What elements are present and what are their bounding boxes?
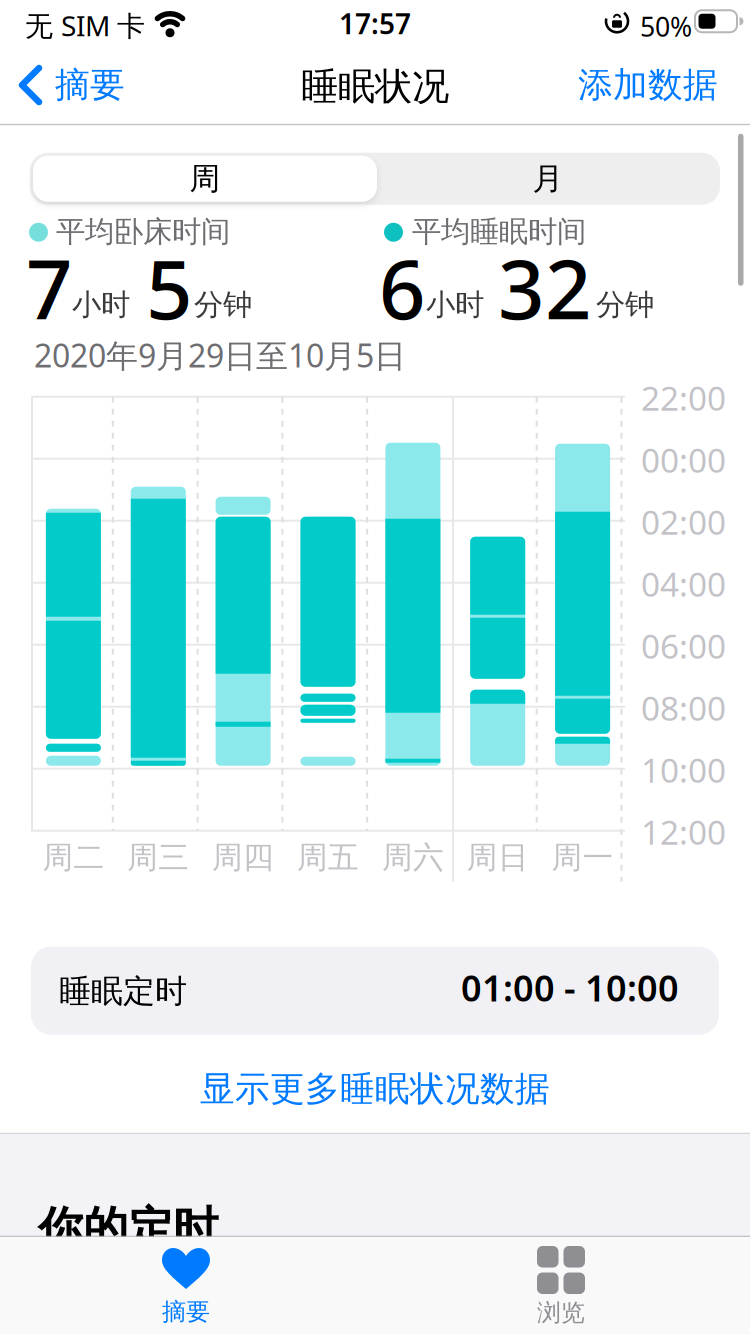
staticText: 22:00	[641, 376, 726, 420]
staticText: 12:00	[641, 810, 726, 854]
staticText: 7	[26, 234, 73, 342]
staticText: 周	[189, 160, 220, 198]
button[interactable]: 周	[33, 156, 377, 202]
staticText: 周二	[42, 839, 104, 876]
staticText: 平均睡眠时间	[412, 214, 586, 250]
staticText: 17:57	[339, 5, 411, 42]
staticText: 06:00	[641, 624, 726, 668]
staticText: 添加数据	[578, 64, 718, 106]
staticText: 00:00	[641, 438, 726, 482]
staticText: 周五	[297, 839, 359, 876]
staticText: 无 SIM 卡	[25, 7, 145, 44]
staticText: 周六	[382, 839, 444, 876]
staticText: 周四	[212, 839, 274, 876]
staticText: 显示更多睡眠状况数据	[200, 1068, 550, 1110]
staticText: 6	[379, 234, 426, 342]
staticText: 08:00	[641, 686, 726, 730]
staticText: 周日	[467, 839, 529, 876]
staticText: 分钟	[194, 287, 252, 323]
staticText: 周一	[552, 839, 614, 876]
staticText: 摘要	[55, 64, 125, 106]
button[interactable]: 摘要	[18, 64, 125, 106]
staticText: 02:00	[641, 500, 726, 544]
button[interactable]: 浏览	[471, 1242, 651, 1332]
staticText: 分钟	[596, 287, 654, 323]
staticText: 月	[532, 160, 563, 198]
staticText: 小时	[72, 287, 130, 323]
staticText: 摘要	[162, 1297, 210, 1326]
button[interactable]: 月	[378, 153, 718, 205]
staticText: 2020年9月29日至10月5日	[34, 334, 406, 376]
staticText: 小时	[426, 287, 484, 323]
staticText: 50%	[640, 9, 692, 44]
staticText: 01:00 - 10:00	[461, 964, 679, 1012]
staticText: 32	[498, 234, 592, 342]
staticText: 平均卧床时间	[56, 214, 230, 250]
staticText: 你的定时	[38, 1201, 218, 1256]
staticText: 周三	[127, 839, 189, 876]
staticText: 睡眠定时	[59, 972, 187, 1011]
staticText: 04:00	[641, 562, 726, 606]
staticText: 睡眠状况	[301, 64, 449, 110]
staticText: 10:00	[641, 748, 726, 792]
button[interactable]: 添加数据	[528, 64, 718, 106]
staticText: 浏览	[537, 1298, 585, 1327]
button[interactable]: 睡眠定时	[31, 947, 719, 1035]
button[interactable]: 显示更多睡眠状况数据	[0, 1068, 750, 1110]
staticText: 5	[146, 234, 193, 342]
button[interactable]: 摘要	[96, 1242, 276, 1332]
